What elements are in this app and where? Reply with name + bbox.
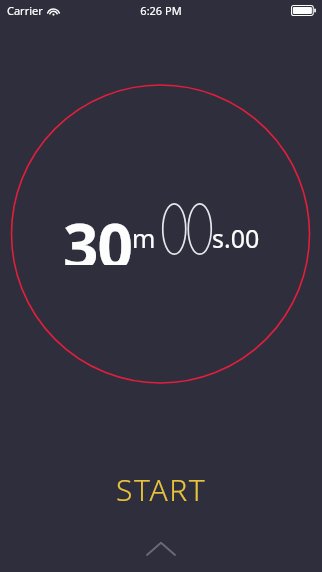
- staticText: Carrier: [7, 3, 43, 18]
- staticText: s.00: [212, 221, 260, 255]
- staticText: m: [132, 221, 156, 255]
- button[interactable]: Show more options: [134, 533, 188, 563]
- button[interactable]: START: [90, 463, 233, 516]
- staticText: 6:26 PM: [140, 3, 182, 18]
- staticText: 30: [63, 203, 132, 265]
- staticText: START: [116, 469, 207, 510]
